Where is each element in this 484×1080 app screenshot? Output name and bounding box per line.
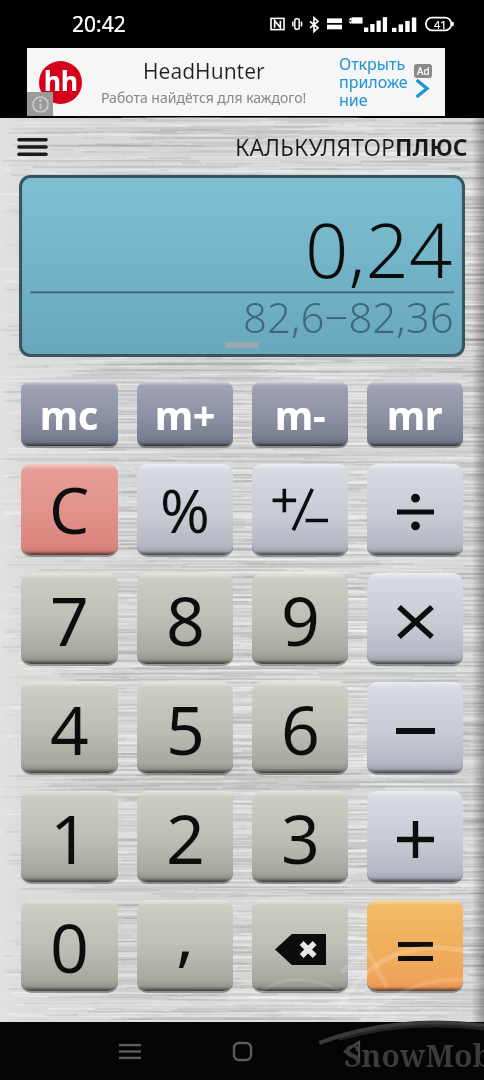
staticText: hh [44,63,78,98]
staticText: 4 [50,682,89,773]
button[interactable]: mr [367,382,463,446]
staticText: 82,6−82,36 [243,288,454,345]
button[interactable]: hh [27,48,445,116]
button[interactable]: 1 [21,791,118,882]
staticText: m+ [155,388,216,441]
staticText: C [49,466,90,553]
staticText: 7 [50,573,89,664]
staticText: , [176,900,195,977]
button[interactable]: mc [21,382,118,446]
button[interactable]: Plus minus [252,464,348,555]
button[interactable]: , [137,900,233,991]
staticText: Ad [417,64,430,78]
button[interactable]: 4 [21,682,118,773]
button[interactable]: 9 [252,573,348,664]
button[interactable]: Menu [8,123,56,171]
button[interactable]: Back [325,1024,379,1078]
button[interactable]: 7 [21,573,118,664]
staticText: 0,24 [305,197,453,301]
button[interactable]: Minus [367,682,463,773]
staticText: m- [275,388,326,441]
staticText: mr [387,388,443,441]
staticText: 2 [166,791,205,882]
staticText: 1 [50,791,89,882]
staticText: 6 [281,682,320,773]
button[interactable]: 0 [21,900,118,991]
staticText: 9 [281,573,320,664]
button[interactable]: 8 [137,573,233,664]
button[interactable]: 5 [137,682,233,773]
staticText: 41 [434,17,447,32]
button[interactable]: Divide [367,464,463,555]
button[interactable]: Home [215,1024,269,1078]
staticText: 8 [166,573,205,664]
button[interactable]: m- [252,382,348,446]
button[interactable]: 2 [137,791,233,882]
button[interactable]: Backspace [252,900,348,991]
button[interactable]: C [21,464,118,555]
button[interactable]: % [137,464,233,555]
staticText: Работа найдётся для каждого! [101,88,307,107]
staticText: HeadHunter [143,57,265,86]
staticText: 3 [281,791,320,882]
staticText: КАЛЬКУЛЯТОРПЛЮС [235,131,468,162]
staticText: 20:42 [72,10,126,39]
button[interactable]: Recents [103,1024,157,1078]
button[interactable]: 3 [252,791,348,882]
staticText: 5 [166,682,205,773]
staticText: % [160,469,210,551]
button[interactable]: Plus [367,791,463,882]
button[interactable]: m+ [137,382,233,446]
button[interactable]: Equals [367,900,463,991]
button[interactable]: Multiply [367,573,463,664]
button[interactable]: 6 [252,682,348,773]
staticText: SnowMobile [344,1035,484,1076]
staticText: mc [40,388,99,441]
staticText: Открыть приложе ние [339,53,408,111]
staticText: 0 [50,900,89,991]
